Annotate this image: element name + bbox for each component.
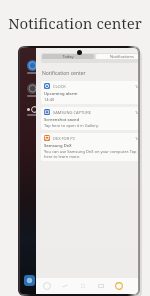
staticText: Today xyxy=(62,54,74,59)
staticText: 14:40 xyxy=(44,97,55,102)
staticText: You can use Samsung DeX on your computer… xyxy=(44,149,138,159)
button[interactable]: SAMSUNG CAPTURE xyxy=(41,107,138,130)
staticText: SAMSUNG CAPTURE xyxy=(53,110,91,115)
staticText: 14:45 xyxy=(135,84,138,89)
staticText: Notification center xyxy=(8,13,142,33)
button[interactable]: Gallery xyxy=(97,282,105,290)
button[interactable]: Today xyxy=(42,54,94,59)
button[interactable]: Apps xyxy=(79,282,87,290)
button[interactable]: DEX FOR PC xyxy=(41,133,138,161)
staticText: Screenshot saved xyxy=(44,117,80,123)
staticText: 14:34 xyxy=(135,110,138,115)
button[interactable]: Notifications xyxy=(96,54,138,59)
staticText: Notification center xyxy=(42,70,86,77)
staticText: Upcoming alarm xyxy=(44,91,78,97)
button[interactable]: Phone xyxy=(43,282,51,290)
button[interactable]: Messages xyxy=(61,282,69,290)
button[interactable]: Camera xyxy=(115,282,123,290)
staticText: Notifications xyxy=(110,54,134,59)
staticText: 14:39 xyxy=(135,136,138,141)
staticText: Samsung DeX xyxy=(44,143,72,149)
staticText: DEX FOR PC xyxy=(53,136,76,141)
staticText: CLOCK xyxy=(53,84,66,89)
staticText: Tap here to open it in Gallery. xyxy=(44,123,99,128)
button[interactable]: CLOCK xyxy=(41,81,138,104)
